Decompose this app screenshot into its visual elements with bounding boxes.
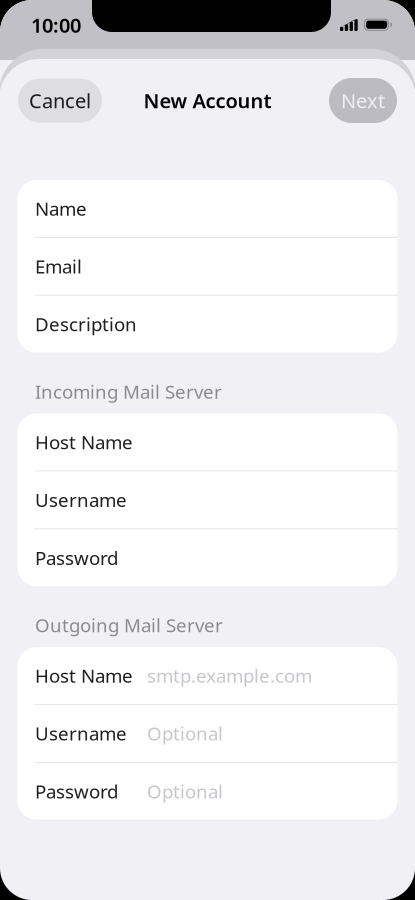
staticText: Password <box>35 779 118 804</box>
button[interactable]: Next <box>329 78 397 123</box>
staticText: Description <box>35 312 137 336</box>
button[interactable]: Password <box>17 763 397 820</box>
staticText: Name <box>35 196 87 221</box>
button[interactable]: Email <box>17 238 397 295</box>
staticText: smtp.example.com <box>147 663 312 688</box>
button[interactable]: Host Name <box>17 414 397 470</box>
button[interactable]: Host Name <box>17 647 397 704</box>
button[interactable]: Name <box>17 180 397 237</box>
staticText: New Account <box>143 87 271 114</box>
staticText: Optional <box>147 721 223 746</box>
staticText: Optional <box>147 779 223 804</box>
staticText: Password <box>35 545 118 570</box>
button[interactable]: Username <box>17 471 397 528</box>
button[interactable]: Cancel <box>18 78 102 122</box>
staticText: Incoming Mail Server <box>35 379 222 404</box>
button[interactable]: Password <box>17 529 397 586</box>
button[interactable]: Username <box>17 705 397 762</box>
staticText: Host Name <box>35 430 133 454</box>
staticText: Username <box>35 487 127 512</box>
staticText: Cancel <box>29 87 91 114</box>
button[interactable]: Description <box>17 296 397 353</box>
staticText: 10:00 <box>31 12 81 38</box>
staticText: Username <box>35 721 127 746</box>
staticText: Next <box>341 87 385 114</box>
staticText: Host Name <box>35 663 133 688</box>
staticText: Email <box>35 254 82 279</box>
staticText: Outgoing Mail Server <box>35 613 223 637</box>
